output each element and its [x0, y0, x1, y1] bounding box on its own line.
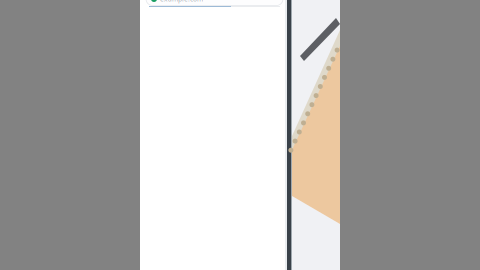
button[interactable]: example.com [140, 0, 277, 13]
staticText: example.com [160, 0, 203, 3]
